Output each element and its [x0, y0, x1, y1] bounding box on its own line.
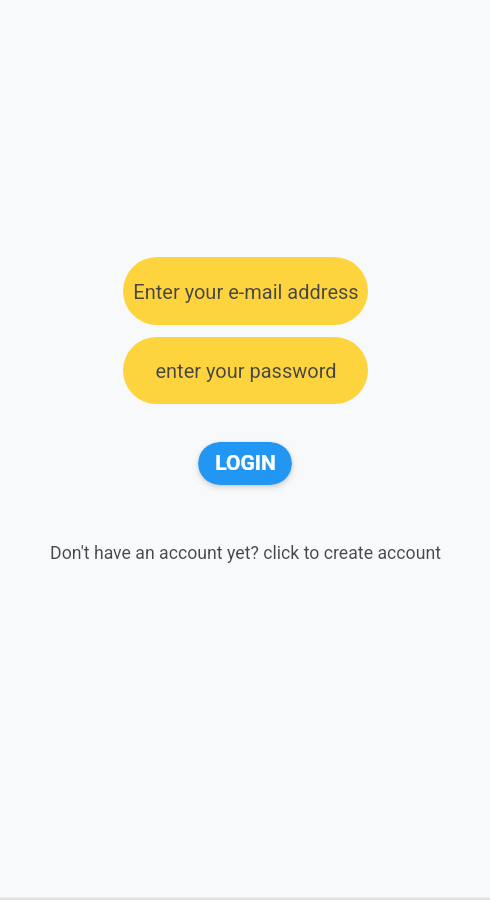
- staticText: Don't have an account yet? click to crea…: [50, 543, 441, 564]
- button[interactable]: LOGIN: [198, 442, 292, 485]
- button[interactable]: enter your password: [123, 337, 368, 404]
- staticText: LOGIN: [215, 451, 276, 476]
- button[interactable]: Don't have an account yet? click to crea…: [48, 542, 443, 565]
- button[interactable]: Enter your e-mail address: [123, 257, 368, 325]
- staticText: enter your password: [155, 359, 337, 382]
- staticText: Enter your e-mail address: [133, 280, 359, 303]
